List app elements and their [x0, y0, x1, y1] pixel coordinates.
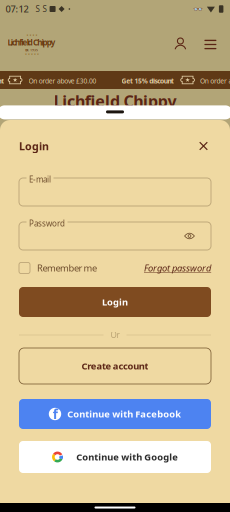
staticText: nt — [0, 77, 4, 85]
staticText: Or — [110, 330, 119, 340]
staticText: E-mail — [29, 174, 51, 185]
staticText: Password — [29, 218, 65, 229]
staticText: Login — [19, 139, 49, 153]
staticText: 07:12 — [6, 3, 29, 15]
staticText: Get 15% discount — [122, 77, 174, 85]
button[interactable]: Close — [196, 138, 211, 153]
button[interactable]: Forgot password — [144, 262, 211, 274]
staticText: S — [43, 4, 47, 14]
staticText: Continue with Google — [76, 451, 178, 463]
staticText: ★ ★ ★ ★ ★ — [25, 52, 39, 55]
staticText: S — [36, 4, 40, 14]
staticText: Create account — [82, 360, 148, 372]
staticText: Lichfield Chippy — [8, 37, 56, 48]
button[interactable]: f — [19, 399, 211, 429]
staticText: f — [53, 405, 58, 423]
button[interactable]: Continue with Google — [19, 441, 211, 473]
staticText: Lichfield Chippy — [53, 90, 176, 112]
button[interactable]: Account — [169, 33, 191, 56]
staticText: Login — [102, 296, 128, 308]
staticText: Est. 1935 — [25, 48, 38, 52]
staticText: ★ ★ ★ ★ — [26, 33, 37, 36]
staticText: 👓 — [193, 4, 203, 13]
staticText: Remember me — [37, 262, 97, 274]
button[interactable]: Remember me — [19, 262, 97, 274]
staticText: Forgot password — [144, 262, 211, 274]
button[interactable]: Create account — [19, 348, 211, 384]
staticText: Continue with Facebook — [67, 408, 181, 420]
staticText: On order a — [200, 77, 230, 85]
button[interactable]: Menu — [199, 34, 221, 54]
button[interactable]: Login — [19, 287, 211, 317]
staticText: On order above £30.00 — [29, 77, 97, 85]
